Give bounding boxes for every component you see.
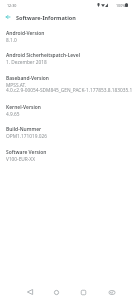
button[interactable]: Back [22, 286, 38, 302]
button[interactable]: Kernel-Version [0, 100, 139, 122]
staticText: Android Sicherheitspatch-Level [6, 52, 81, 59]
staticText: V100-EUR-XX [6, 156, 35, 163]
staticText: 4.9.65 [6, 111, 20, 118]
button[interactable]: Android-Version [0, 26, 139, 48]
button[interactable]: Back [1, 11, 14, 23]
staticText: 12:30 [7, 3, 17, 8]
staticText: Software-Information [16, 14, 76, 21]
staticText: Baseband-Version [6, 75, 49, 82]
button[interactable]: Build-Nummer [0, 122, 139, 145]
staticText: Kernel-Version [6, 104, 41, 111]
staticText: MPSS.AT. [6, 82, 27, 89]
button[interactable]: Android Sicherheitspatch-Level [0, 48, 139, 71]
staticText: 8.1.0 [6, 37, 17, 44]
staticText: OPM1.171019.026 [6, 133, 48, 140]
staticText: Software Version [6, 149, 47, 156]
button[interactable]: Baseband-Version [0, 71, 139, 100]
staticText: Android-Version [6, 30, 45, 37]
button[interactable]: Recent apps [75, 286, 91, 302]
button[interactable]: Software Version [0, 145, 139, 168]
button[interactable]: Home [48, 286, 64, 302]
button[interactable]: Screen capture [104, 286, 120, 302]
staticText: 4.0.c2.9-00054-SDM845_GEN_PACK-1.177853.… [6, 87, 133, 94]
staticText: 100% [116, 3, 126, 8]
staticText: Build-Nummer [6, 126, 42, 133]
staticText: 1. Dezember 2018 [6, 59, 47, 66]
